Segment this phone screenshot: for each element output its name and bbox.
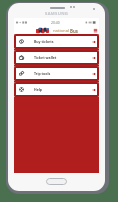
button[interactable]: Buy tickets xyxy=(14,34,99,49)
staticText: Help xyxy=(34,87,43,92)
staticText: 20:40 xyxy=(51,20,60,25)
staticText: SAMSUNG xyxy=(45,11,69,17)
staticText: Buy tickets xyxy=(34,39,54,44)
button[interactable]: Trip tools xyxy=(14,66,99,81)
staticText: national xyxy=(53,28,70,34)
button[interactable]: Ticket wallet xyxy=(14,50,99,65)
button[interactable]: Menu xyxy=(93,28,98,33)
staticText: Ticket wallet xyxy=(34,55,57,60)
button[interactable]: Help xyxy=(14,82,99,97)
staticText: Trip tools xyxy=(34,71,51,76)
staticText: Bus xyxy=(70,28,78,34)
